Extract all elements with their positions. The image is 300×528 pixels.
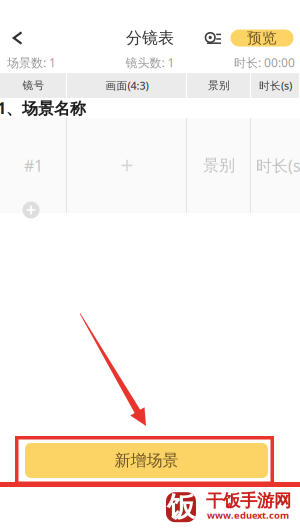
- staticText: 场景数: 1: [7, 54, 56, 70]
- staticText: www.eduext.com: [207, 509, 289, 521]
- staticText: 1、场景名称: [0, 97, 86, 119]
- staticText: 时长(s): [256, 155, 300, 176]
- button[interactable]: Back: [2, 24, 32, 52]
- staticText: #1: [24, 155, 43, 176]
- staticText: 干饭手游网: [206, 490, 291, 511]
- button[interactable]: Settings: [202, 25, 224, 51]
- staticText: 画面(4:3): [105, 78, 148, 93]
- staticText: 时长: 00:00: [234, 54, 295, 70]
- staticText: 预览: [247, 29, 277, 47]
- staticText: 景别: [208, 79, 230, 92]
- staticText: 景别: [203, 156, 235, 175]
- staticText: 镜头数: 1: [125, 54, 174, 70]
- staticText: 时长(s): [259, 78, 292, 93]
- staticText: 新增场景: [114, 451, 178, 470]
- button[interactable]: 预览: [230, 29, 293, 46]
- staticText: 饭: [167, 490, 195, 524]
- button[interactable]: 新增场景: [25, 443, 268, 478]
- staticText: +: [120, 150, 133, 180]
- button[interactable]: Add shot: [20, 199, 42, 221]
- staticText: 分镜表: [126, 28, 174, 48]
- staticText: 镜号: [22, 79, 44, 92]
